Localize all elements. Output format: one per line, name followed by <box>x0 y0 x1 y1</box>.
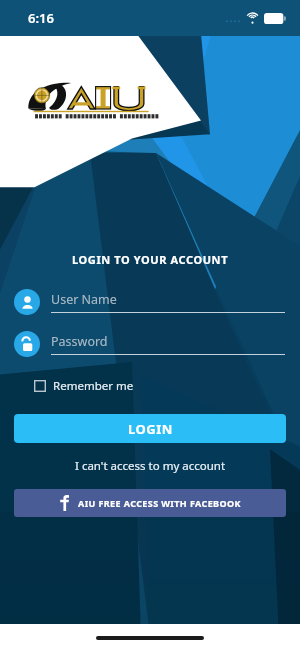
staticText: Password <box>51 333 108 350</box>
button[interactable]: I can't access to my account <box>69 456 232 476</box>
staticText: User Name <box>51 291 117 308</box>
other: Password <box>14 331 40 357</box>
staticText: LOGIN <box>128 420 173 438</box>
button[interactable]: LOGIN <box>14 414 286 443</box>
other: User Name <box>14 289 40 315</box>
staticText: AIU FREE ACCESS WITH FACEBOOK <box>78 497 241 509</box>
staticText: LOGIN TO YOUR ACCOUNT <box>72 252 229 267</box>
button[interactable]: AIU FREE ACCESS WITH FACEBOOK <box>14 489 286 517</box>
staticText: I can't access to my account <box>75 458 226 474</box>
button[interactable]: Remember me <box>34 376 300 396</box>
button[interactable]: User Name <box>14 289 285 315</box>
staticText: 6:16 <box>28 9 54 27</box>
staticText: Remember me <box>53 378 134 394</box>
button[interactable]: Password <box>14 331 285 357</box>
